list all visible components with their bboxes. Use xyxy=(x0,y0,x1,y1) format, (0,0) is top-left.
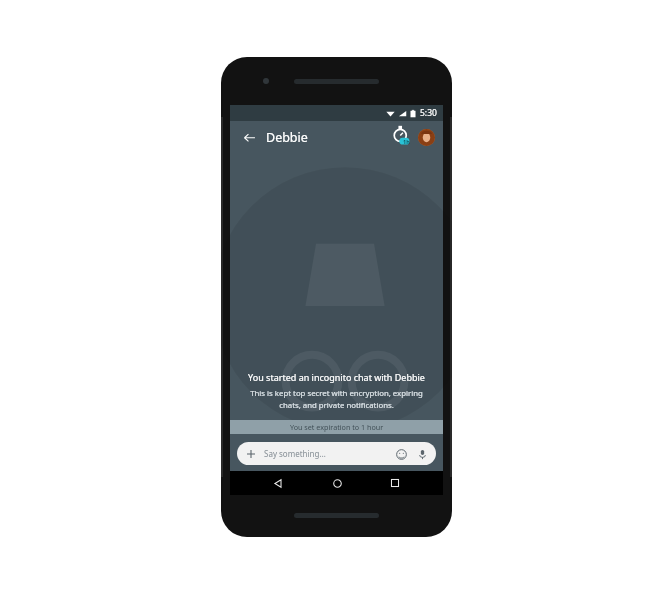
button[interactable]: Debbie profile photo xyxy=(418,129,435,146)
staticText: 5:30 xyxy=(420,107,437,119)
button[interactable]: Add attachment xyxy=(244,447,258,461)
staticText: You started an incognito chat with Debbi… xyxy=(248,371,425,383)
staticText: This is kept top secret with encryption,… xyxy=(244,388,429,410)
staticText: Debbie xyxy=(266,129,308,146)
button[interactable]: Voice message xyxy=(415,447,429,461)
button[interactable]: Insert emoji xyxy=(394,447,408,461)
staticText: 1h xyxy=(403,138,410,145)
button[interactable]: Recent apps xyxy=(384,472,406,494)
staticText: You set expiration to 1 hour xyxy=(290,422,384,432)
button[interactable]: Message expiration timer xyxy=(391,127,413,147)
button[interactable]: Home xyxy=(326,472,348,494)
staticText: Say something… xyxy=(264,448,326,459)
button[interactable]: Back xyxy=(267,472,289,494)
button[interactable]: Back xyxy=(238,126,260,148)
button[interactable]: You set expiration to 1 hour xyxy=(230,420,443,434)
button[interactable]: Add attachment xyxy=(237,442,436,465)
